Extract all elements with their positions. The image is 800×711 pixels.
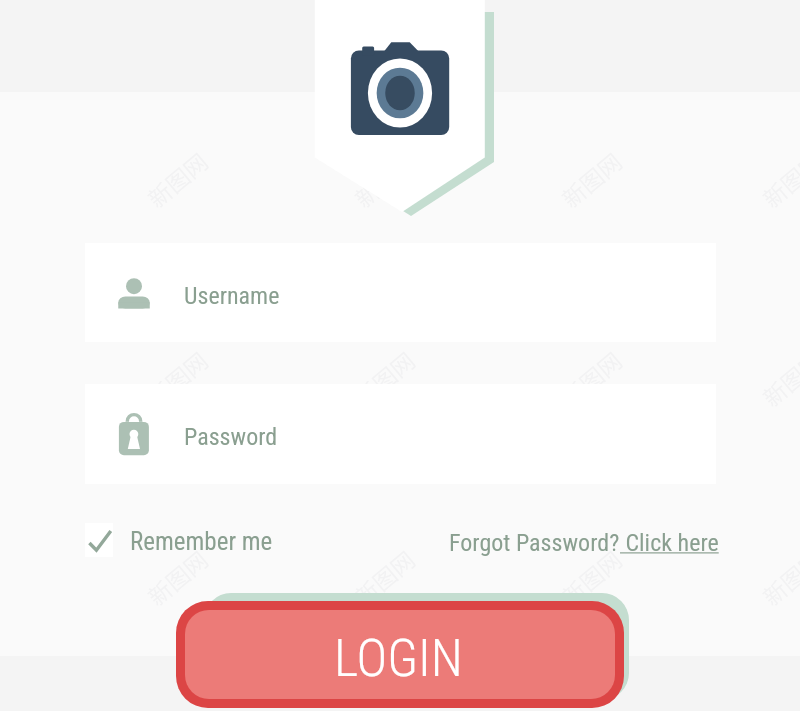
button[interactable]: Password [85, 384, 716, 484]
staticText: 新图网 [554, 542, 628, 612]
staticText: Password [184, 423, 278, 451]
staticText: 新图网 [347, 144, 421, 214]
staticText: Remember me [130, 527, 273, 556]
staticText: Forgot Password? [449, 529, 620, 557]
staticText: LOGIN [334, 628, 463, 689]
button[interactable]: Username [85, 243, 716, 342]
staticText: 新图网 [140, 343, 214, 413]
button[interactable]: Forgot Password? [449, 526, 719, 560]
staticText: 新图网 [347, 343, 421, 413]
staticText: 新图网 [554, 343, 628, 413]
staticText: 新图网 [347, 542, 421, 612]
button[interactable]: Remember me [85, 523, 256, 557]
staticText: Username [184, 282, 280, 310]
staticText: Click here [620, 529, 719, 557]
staticText: 新图网 [140, 542, 214, 612]
button[interactable]: LOGIN [185, 610, 615, 699]
